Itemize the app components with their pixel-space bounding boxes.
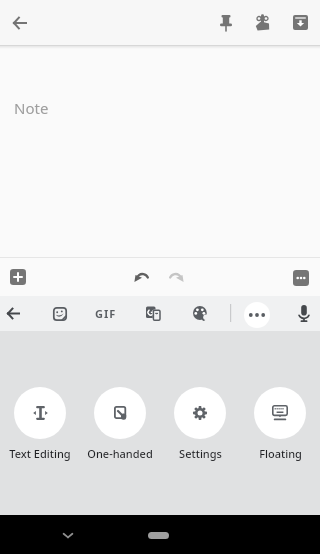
staticText: Note — [14, 98, 49, 118]
staticText: GIF — [95, 306, 117, 321]
button[interactable] — [94, 387, 146, 439]
button[interactable] — [174, 387, 226, 439]
staticText: Settings — [179, 446, 222, 461]
button[interactable] — [244, 302, 270, 328]
staticText: Text Editing — [9, 446, 71, 461]
button[interactable] — [220, 15, 232, 31]
button[interactable]: GIF — [92, 301, 120, 325]
button[interactable] — [193, 306, 207, 320]
button[interactable] — [169, 271, 184, 285]
button[interactable] — [148, 532, 169, 539]
button[interactable] — [53, 307, 67, 321]
button[interactable] — [293, 15, 308, 30]
button[interactable] — [298, 305, 310, 323]
staticText: Floating — [259, 446, 302, 461]
button[interactable] — [13, 16, 27, 30]
button[interactable] — [146, 306, 161, 321]
button[interactable] — [14, 387, 66, 439]
button[interactable] — [7, 307, 20, 320]
button[interactable] — [10, 269, 26, 285]
button[interactable] — [254, 387, 306, 439]
button[interactable] — [134, 271, 149, 285]
button[interactable] — [255, 14, 270, 31]
staticText: One-handed — [87, 446, 153, 461]
button[interactable] — [293, 270, 309, 286]
button[interactable] — [63, 533, 73, 539]
